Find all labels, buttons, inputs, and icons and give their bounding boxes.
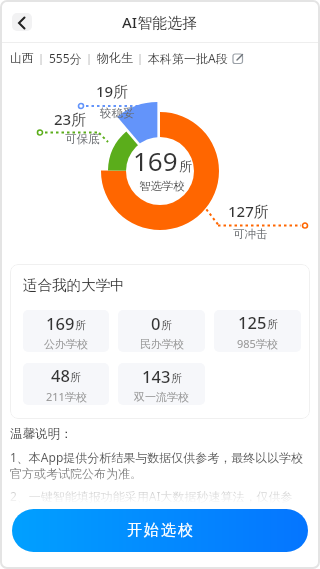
staticText: 可保底 xyxy=(65,132,100,146)
staticText: | xyxy=(86,50,93,65)
button[interactable]: 48 xyxy=(23,363,109,405)
button[interactable]: 125 xyxy=(214,310,301,352)
staticText: 智选学校 xyxy=(139,179,185,193)
staticText: 公办学校 xyxy=(44,337,88,351)
staticText: 2、一键智能填报功能采用AI大数据秒速算法，仅供参考，请以学校官方公布数据为准。 xyxy=(10,488,310,521)
staticText: | xyxy=(137,50,144,65)
staticText: 所 xyxy=(171,371,182,385)
staticText: 物化生 xyxy=(97,50,133,65)
staticText: 本科第一批A段 xyxy=(148,50,228,66)
staticText: 开始选校 xyxy=(126,521,194,540)
staticText: 48 xyxy=(51,364,70,386)
staticText: 可冲击 xyxy=(233,227,268,241)
staticText: 所 xyxy=(161,318,172,332)
staticText: 143 xyxy=(142,365,171,387)
staticText: 19所 xyxy=(96,81,129,101)
button[interactable]: 143 xyxy=(118,363,205,405)
staticText: 所 xyxy=(179,158,192,174)
staticText: 所 xyxy=(75,318,86,332)
staticText: 所 xyxy=(267,317,278,331)
staticText: 0 xyxy=(151,312,161,334)
staticText: 125 xyxy=(238,311,267,333)
staticText: 211学校 xyxy=(46,389,87,404)
staticText: | xyxy=(38,50,45,65)
staticText: 169 xyxy=(46,312,75,334)
staticText: 双一流学校 xyxy=(134,390,189,404)
button[interactable]: 山西 xyxy=(10,43,320,72)
staticText: 1、本App提供分析结果与数据仅供参考，最终以以学校官方或考试院公布为准。 xyxy=(10,449,310,482)
button[interactable]: 开始选校 xyxy=(12,509,308,552)
button[interactable] xyxy=(12,13,32,31)
staticText: 较稳妥 xyxy=(100,106,135,120)
staticText: 127所 xyxy=(228,201,269,221)
staticText: 985学校 xyxy=(237,336,278,351)
staticText: 所 xyxy=(70,370,81,384)
button[interactable]: 0 xyxy=(118,310,205,352)
staticText: 温馨说明： xyxy=(10,426,73,442)
staticText: 169 xyxy=(133,143,178,178)
staticText: 民办学校 xyxy=(140,337,184,351)
staticText: 适合我的大学中 xyxy=(23,276,125,294)
staticText: AI智能选择 xyxy=(122,12,198,32)
staticText: 23所 xyxy=(54,109,87,129)
staticText: 555分 xyxy=(49,50,82,66)
button[interactable]: 169 xyxy=(23,310,109,352)
staticText: 山西 xyxy=(10,50,34,65)
